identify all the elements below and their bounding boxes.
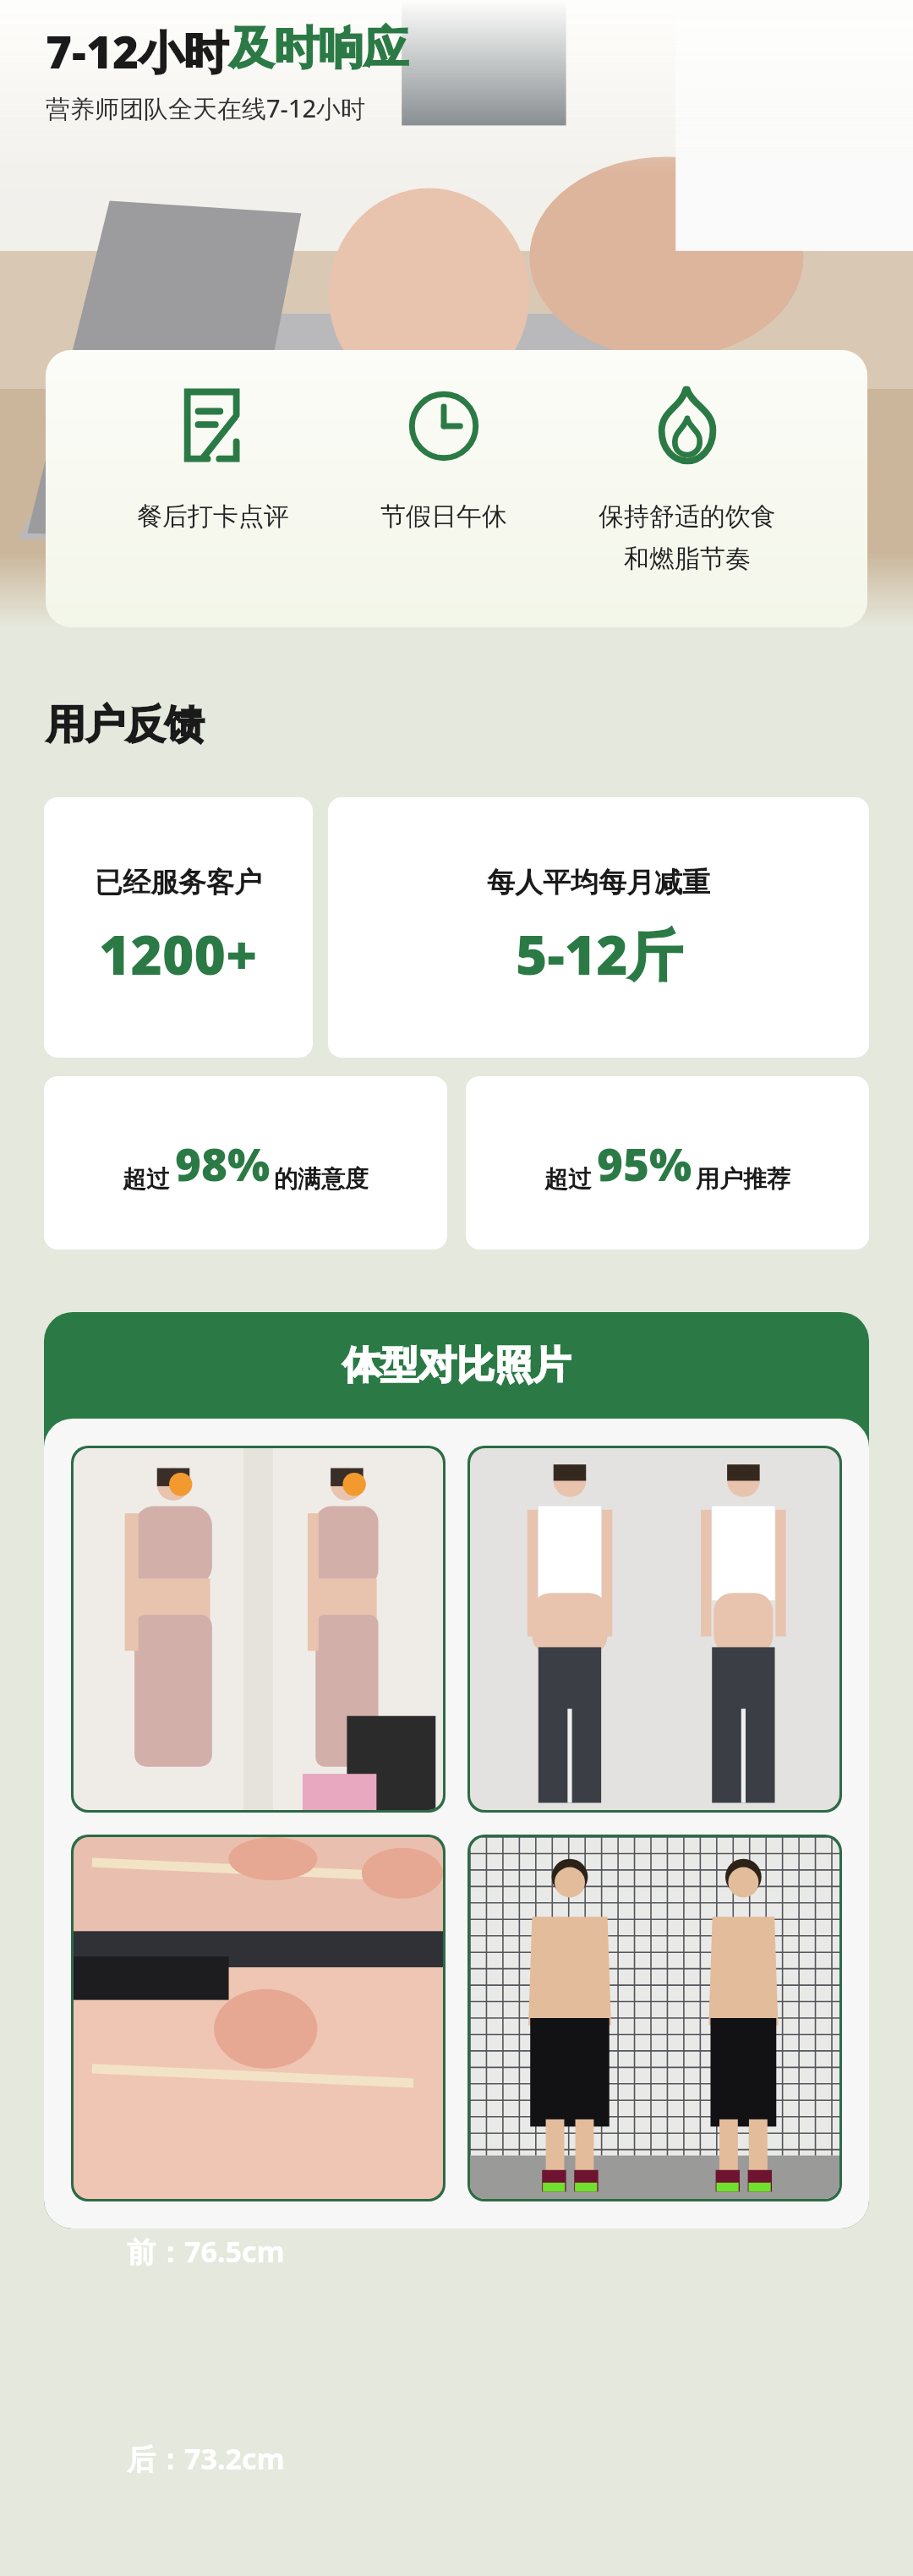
staticText: 和燃脂节奏 <box>624 543 751 575</box>
staticText: 营养师团队全天在线7-12小时 <box>46 91 366 125</box>
staticText: 的满意度 <box>274 1164 369 1194</box>
staticText: 7-12小时 <box>46 20 229 81</box>
button[interactable]: 体型对比照片 <box>44 1312 869 2229</box>
staticText: 95% <box>597 1133 692 1194</box>
button[interactable] <box>74 1448 443 1810</box>
staticText: 后：73.2cm <box>127 2439 285 2478</box>
button[interactable]: 超过 <box>466 1076 869 1250</box>
button[interactable]: Fat burning <box>599 387 776 575</box>
button[interactable]: Holiday rest <box>380 387 507 533</box>
staticText: 餐后打卡点评 <box>137 500 289 533</box>
staticText: 已经服务客户 <box>95 865 262 900</box>
staticText: 1200+ <box>99 917 258 991</box>
staticText: 98% <box>175 1133 271 1194</box>
staticText: 节假日午休 <box>380 500 507 533</box>
button[interactable] <box>470 1837 839 2199</box>
staticText: 用户反馈 <box>46 700 205 750</box>
staticText: 每人平均每月减重 <box>487 865 710 900</box>
staticText: 保持舒适的饮食 <box>599 500 776 533</box>
staticText: 及时响应 <box>229 20 408 77</box>
staticText: 前：76.5cm <box>127 2232 285 2271</box>
button[interactable]: 超过 <box>44 1076 447 1250</box>
button[interactable] <box>470 1448 839 1810</box>
button[interactable] <box>74 1837 443 2199</box>
staticText: 体型对比照片 <box>342 1342 571 1390</box>
button[interactable]: Meal check-in review <box>137 387 289 533</box>
staticText: 5-12斤 <box>516 917 682 991</box>
button[interactable]: 已经服务客户 <box>44 797 313 1058</box>
staticText: 用户推荐 <box>696 1164 790 1194</box>
button[interactable]: Meal check-in review <box>46 350 867 627</box>
button[interactable]: 每人平均每月减重 <box>328 797 869 1058</box>
staticText: 超过 <box>123 1164 170 1194</box>
staticText: 超过 <box>544 1164 592 1194</box>
